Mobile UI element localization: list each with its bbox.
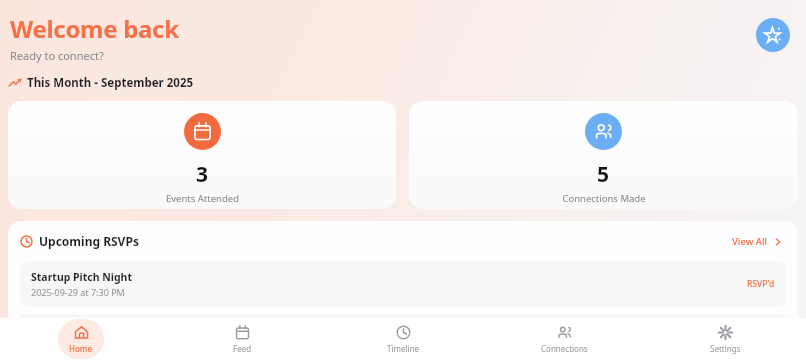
staticText: View All: [732, 235, 768, 248]
staticText: Feed: [233, 343, 252, 354]
button[interactable]: AI assistant: [756, 18, 790, 52]
button[interactable]: Startup Pitch Night: [20, 261, 786, 307]
staticText: Events Attended: [166, 192, 239, 205]
button[interactable]: Feed: [162, 318, 323, 360]
staticText: Timeline: [387, 343, 420, 354]
button[interactable]: 5: [409, 101, 798, 209]
button[interactable]: 3: [8, 101, 396, 209]
button[interactable]: View All: [728, 231, 786, 252]
staticText: This Month - September 2025: [27, 75, 194, 91]
staticText: Connections: [541, 343, 588, 354]
button[interactable]: Home: [0, 318, 162, 360]
staticText: RSVP'd: [747, 278, 775, 290]
staticText: Home: [69, 343, 93, 354]
button[interactable]: Settings: [645, 318, 806, 360]
button[interactable]: Connections: [484, 318, 645, 360]
staticText: Startup Pitch Night: [31, 270, 132, 284]
staticText: Upcoming RSVPs: [39, 233, 139, 249]
staticText: Ready to connect?: [10, 48, 104, 63]
button[interactable]: Timeline: [323, 318, 484, 360]
staticText: 2025-09-29 at 7:30 PM: [31, 286, 125, 298]
staticText: 3: [196, 160, 209, 189]
staticText: Welcome back: [10, 12, 179, 45]
staticText: Connections Made: [562, 192, 646, 205]
staticText: 5: [597, 160, 610, 189]
staticText: Settings: [710, 343, 741, 354]
